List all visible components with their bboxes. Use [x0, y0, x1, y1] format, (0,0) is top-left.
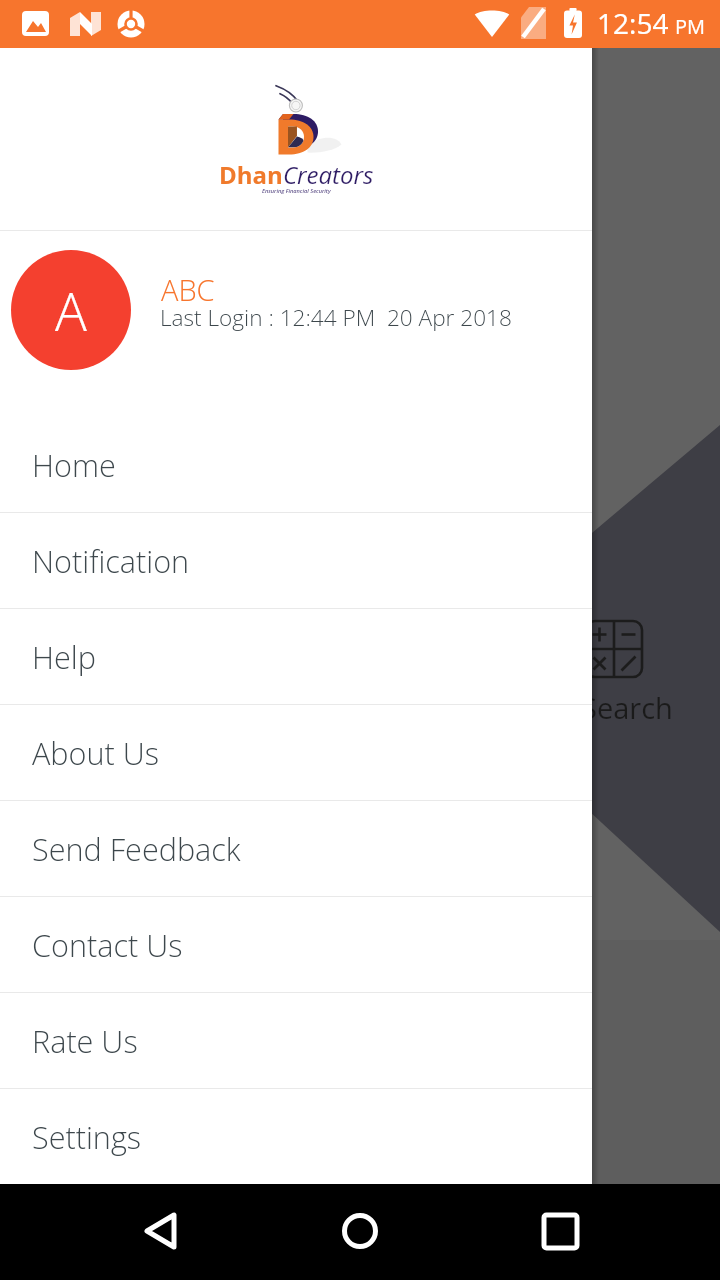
button[interactable]: Recent apps [512, 1183, 608, 1279]
button[interactable]: Home [0, 417, 592, 512]
staticText: Help [32, 636, 96, 678]
staticText: Last Login : 12:44 PM 20 Apr 2018 [160, 302, 512, 333]
button[interactable]: Help [0, 609, 592, 704]
staticText: Ensuring Financial Security [262, 187, 331, 195]
staticText: Contact Us [32, 924, 183, 966]
button[interactable]: Settings [0, 1089, 592, 1184]
button[interactable]: Home [312, 1183, 408, 1279]
staticText: About Us [32, 732, 160, 774]
staticText: ABC [161, 270, 215, 309]
staticText: Notification [32, 540, 190, 582]
staticText: Rate Us [32, 1020, 138, 1062]
button[interactable]: Notification [0, 513, 592, 608]
button[interactable]: Contact Us [0, 897, 592, 992]
staticText: Settings [32, 1116, 142, 1158]
staticText: Search [581, 688, 673, 727]
staticText: Dhan [219, 158, 283, 191]
staticText: PM [675, 13, 706, 40]
staticText: Send Feedback [32, 828, 241, 870]
button[interactable]: Rate Us [0, 993, 592, 1088]
button[interactable]: Back [112, 1183, 208, 1279]
staticText: Home [32, 444, 116, 486]
staticText: A [55, 274, 87, 346]
button[interactable]: Send Feedback [0, 801, 592, 896]
button[interactable]: About Us [0, 705, 592, 800]
staticText: Creators [283, 158, 374, 191]
staticText: 12:54 [597, 4, 669, 42]
